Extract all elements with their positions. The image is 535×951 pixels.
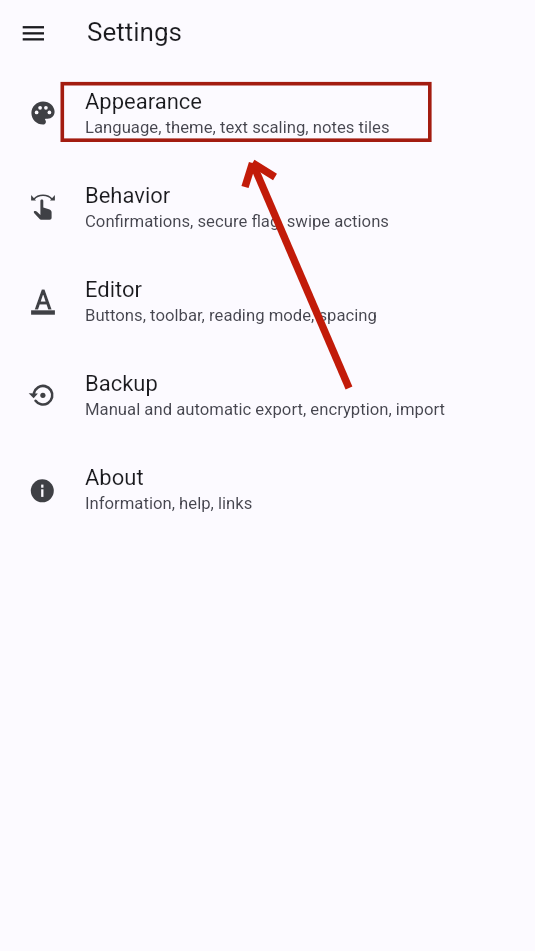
- staticText: Buttons, toolbar, reading mode, spacing: [85, 306, 377, 326]
- button[interactable]: Appearance settings: [0, 66, 535, 160]
- button[interactable]: Backup settings: [0, 348, 535, 442]
- staticText: Editor: [85, 277, 143, 303]
- staticText: About: [85, 465, 144, 491]
- staticText: A: [35, 286, 52, 315]
- staticText: Information, help, links: [85, 494, 253, 514]
- button[interactable]: About: [0, 442, 535, 536]
- staticText: Confirmations, secure flag, swipe action…: [85, 212, 389, 232]
- staticText: Settings: [87, 17, 182, 47]
- staticText: Appearance: [85, 89, 203, 115]
- button[interactable]: Behavior settings: [0, 160, 535, 254]
- button[interactable]: Editor settings: [0, 254, 535, 348]
- button[interactable]: Open navigation menu: [11, 11, 55, 55]
- staticText: Backup: [85, 371, 158, 397]
- staticText: Manual and automatic export, encryption,…: [85, 400, 445, 420]
- staticText: Language, theme, text scaling, notes til…: [85, 118, 390, 138]
- staticText: Behavior: [85, 183, 171, 209]
